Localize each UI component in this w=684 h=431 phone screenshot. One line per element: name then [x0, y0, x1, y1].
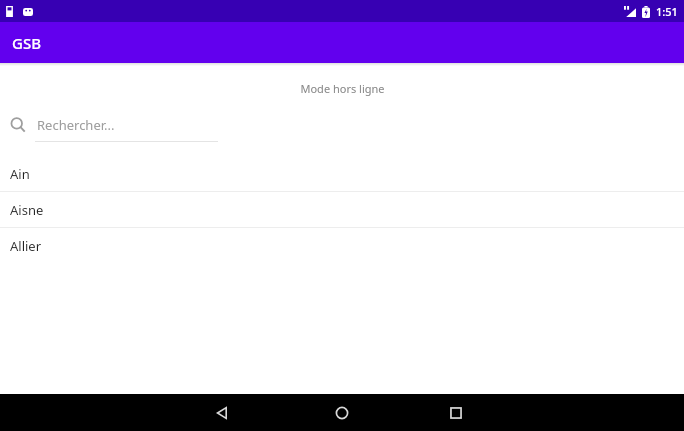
button[interactable]: Recent apps: [442, 399, 470, 427]
staticText: Ain: [10, 165, 30, 183]
button[interactable]: Search: [0, 110, 684, 156]
other: Search: [10, 117, 26, 133]
staticText: Aisne: [10, 201, 44, 219]
staticText: GSB: [12, 33, 41, 53]
button[interactable]: Home: [328, 399, 356, 427]
button[interactable]: Aisne: [0, 192, 684, 227]
staticText: Mode hors ligne: [300, 81, 385, 96]
staticText: 1:51: [656, 4, 678, 19]
button[interactable]: Ain: [0, 156, 684, 191]
staticText: Allier: [10, 237, 42, 255]
button[interactable]: Back: [208, 399, 236, 427]
staticText: Rechercher...: [37, 116, 115, 134]
button[interactable]: Allier: [0, 228, 684, 263]
